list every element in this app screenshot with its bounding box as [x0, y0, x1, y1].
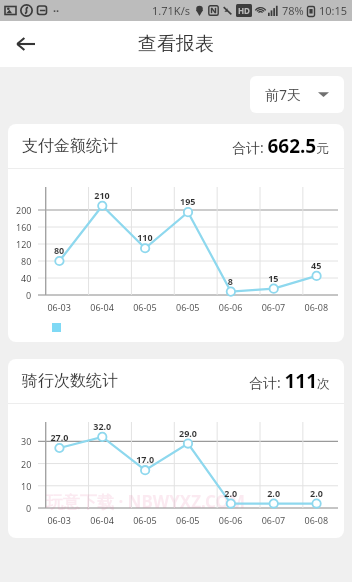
button[interactable]: 前7天: [250, 76, 344, 113]
staticText: 10:15: [319, 3, 348, 18]
staticText: 前7天: [265, 85, 302, 104]
staticText: 合计: 111次: [249, 368, 330, 394]
staticText: 78%: [282, 3, 304, 18]
staticText: 查看报表: [138, 32, 214, 56]
staticText: 骑行次数统计: [22, 371, 118, 391]
staticText: HD: [238, 5, 250, 16]
staticText: ··: [53, 3, 60, 18]
staticText: 1.71K/s: [152, 3, 190, 18]
staticText: 支付金额统计: [22, 136, 118, 156]
button[interactable]: Back: [8, 26, 44, 62]
button[interactable]: 支付金额统计: [8, 124, 344, 342]
staticText: 合计: 662.5元: [232, 133, 330, 159]
button[interactable]: 骑行次数统计: [8, 359, 344, 538]
